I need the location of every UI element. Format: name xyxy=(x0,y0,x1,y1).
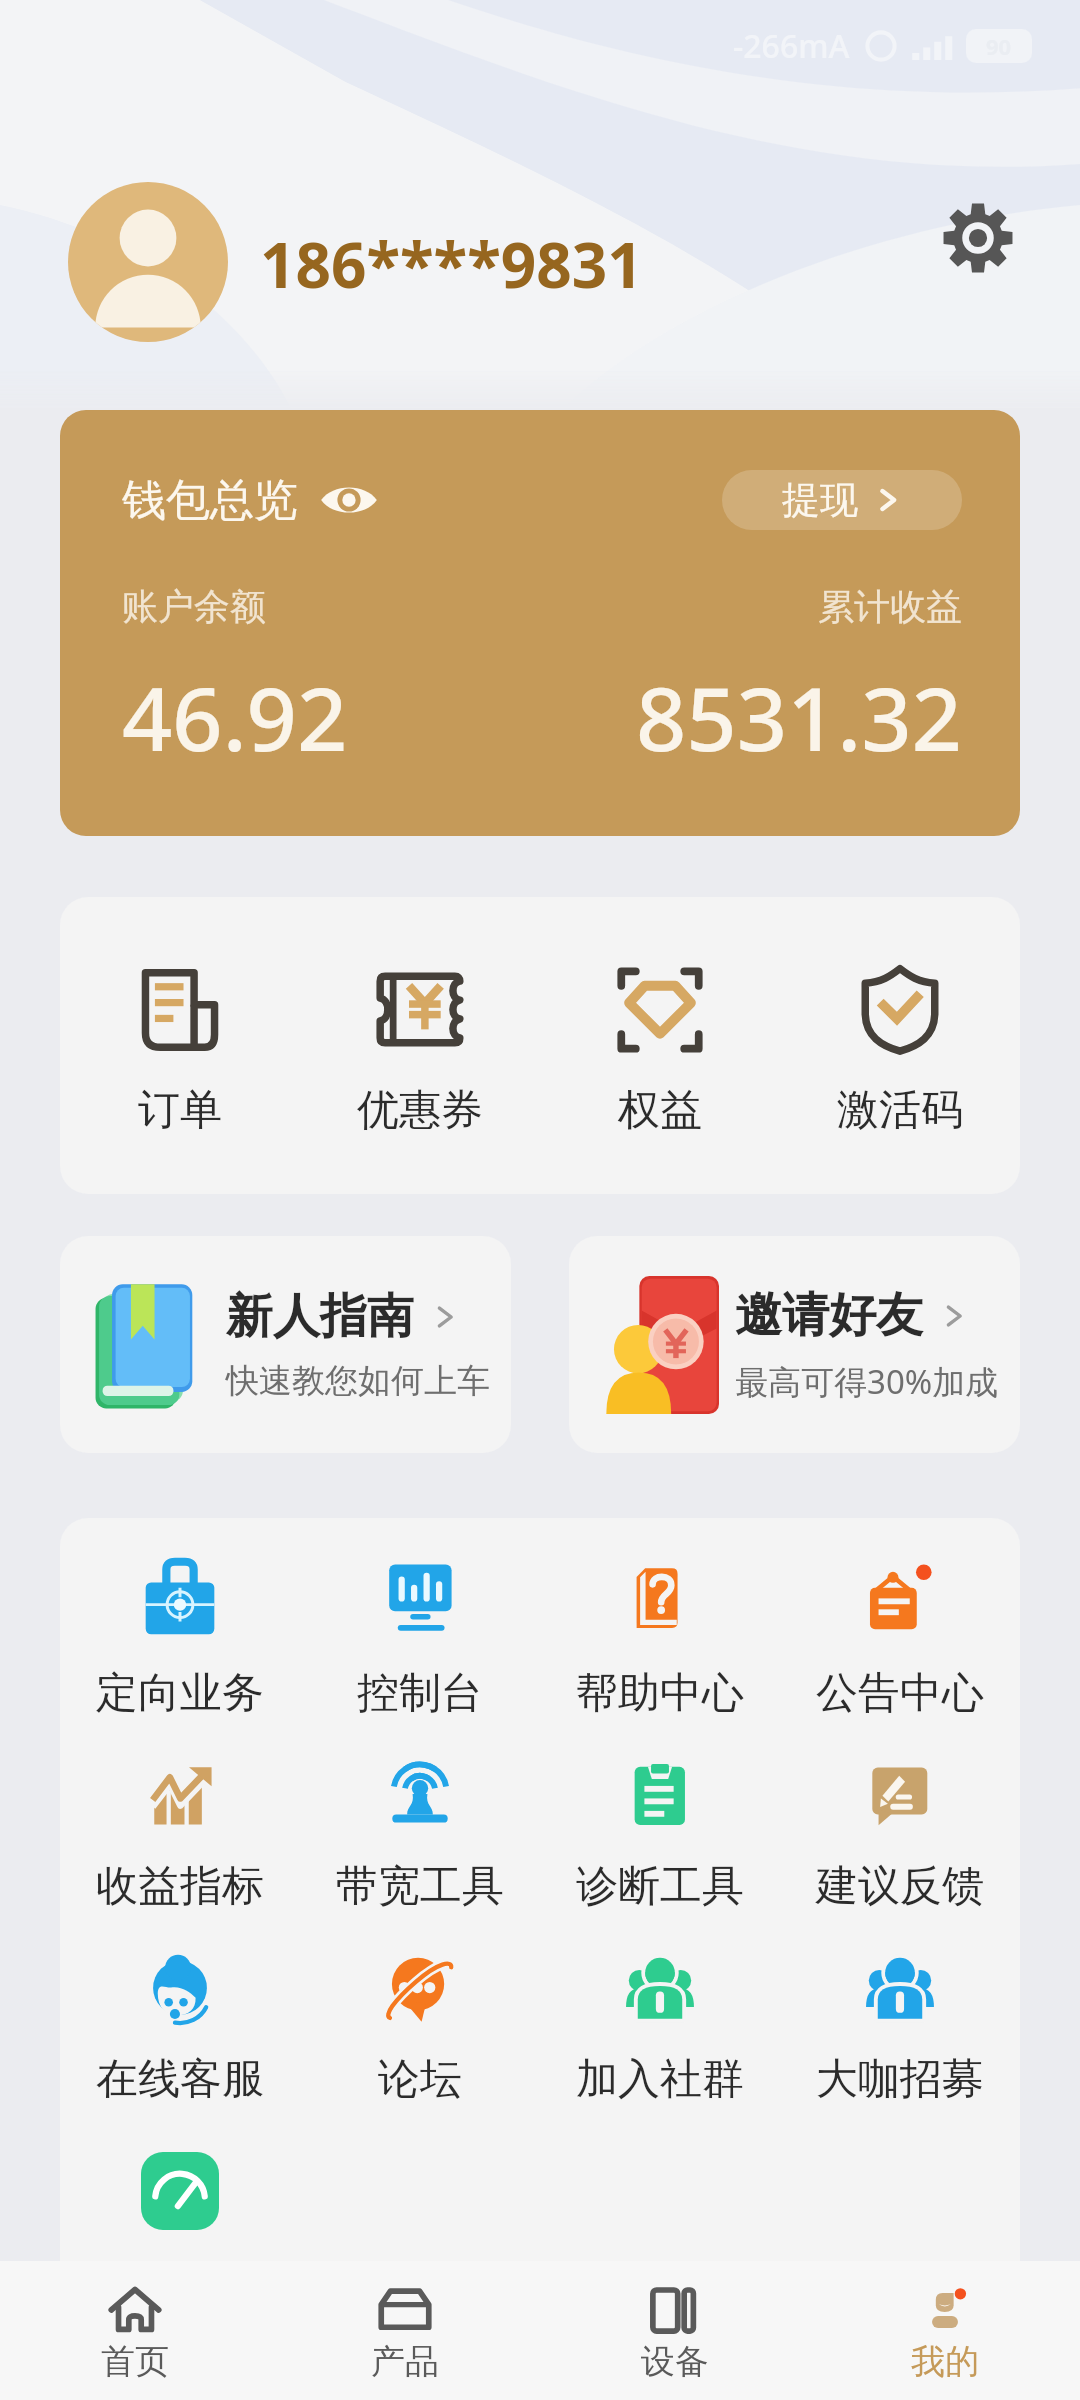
staticText: 46.92 xyxy=(122,657,348,777)
staticText: 在线客服 xyxy=(96,2053,264,2106)
button[interactable]: 产品 xyxy=(270,2283,540,2383)
button[interactable]: 帮助中心 xyxy=(540,1559,780,1720)
staticText: 公告中心 xyxy=(816,1667,984,1720)
button[interactable]: 提现 xyxy=(722,470,962,530)
staticText: 帮助中心 xyxy=(576,1667,744,1720)
staticText: 8531.32 xyxy=(636,657,962,777)
staticText: 定向业务 xyxy=(96,1667,264,1720)
staticText: 快速教您如何上车 xyxy=(226,1360,490,1402)
staticText: 钱包总览 xyxy=(122,473,298,528)
staticText: 累计收益 xyxy=(818,584,962,629)
button[interactable]: 首页 xyxy=(0,2283,270,2383)
staticText: 我的 xyxy=(911,2340,979,2383)
staticText: 186****9831 xyxy=(260,222,643,306)
button[interactable]: 控制台 xyxy=(300,1559,540,1720)
staticText: 提现 xyxy=(782,476,858,524)
button[interactable]: Settings xyxy=(938,198,1018,278)
button[interactable]: 建议反馈 xyxy=(780,1752,1020,1913)
button[interactable]: 公告中心 xyxy=(780,1559,1020,1720)
button[interactable]: 论坛 xyxy=(300,1945,540,2106)
button[interactable]: 钱包总览 xyxy=(60,410,1020,836)
button[interactable]: 加入社群 xyxy=(540,1945,780,2106)
staticText: 建议反馈 xyxy=(816,1860,984,1913)
button[interactable]: 权益 xyxy=(540,966,780,1137)
staticText: 订单 xyxy=(138,1084,222,1137)
staticText: 产品 xyxy=(371,2340,439,2383)
staticText: 邀请好友 xyxy=(735,1286,940,1345)
staticText: 带宽工具 xyxy=(336,1860,504,1913)
button[interactable]: Profile avatar xyxy=(68,182,228,342)
button[interactable]: 设备 xyxy=(540,2283,810,2383)
button[interactable]: 定向业务 xyxy=(60,1559,300,1720)
button[interactable]: 新人指南 xyxy=(60,1236,511,1453)
button[interactable]: 激活码 xyxy=(780,966,1020,1137)
button[interactable]: Speed test xyxy=(141,2152,219,2230)
staticText: 收益指标 xyxy=(96,1860,264,1913)
button[interactable]: 带宽工具 xyxy=(300,1752,540,1913)
staticText: 诊断工具 xyxy=(576,1860,744,1913)
button[interactable]: 收益指标 xyxy=(60,1752,300,1913)
staticText: 最高可得30%加成 xyxy=(735,1359,999,1404)
button[interactable]: 在线客服 xyxy=(60,1945,300,2106)
staticText: 账户余额 xyxy=(122,584,266,629)
button[interactable]: 优惠券 xyxy=(300,966,540,1137)
staticText: 首页 xyxy=(101,2340,169,2383)
staticText: 设备 xyxy=(641,2340,709,2383)
button[interactable]: 诊断工具 xyxy=(540,1752,780,1913)
staticText: -266mA xyxy=(733,24,850,68)
staticText: 新人指南 xyxy=(226,1287,431,1346)
staticText: 权益 xyxy=(618,1084,702,1137)
staticText: 优惠券 xyxy=(357,1084,483,1137)
staticText: 大咖招募 xyxy=(816,2053,984,2106)
staticText: 激活码 xyxy=(837,1084,963,1137)
button[interactable]: 我的 xyxy=(810,2283,1080,2383)
button[interactable]: 订单 xyxy=(60,966,300,1137)
button[interactable]: 邀请好友 xyxy=(569,1236,1020,1453)
staticText: 控制台 xyxy=(357,1667,483,1720)
button[interactable]: 大咖招募 xyxy=(780,1945,1020,2106)
button[interactable]: Toggle balance visibility xyxy=(320,471,378,529)
staticText: 加入社群 xyxy=(576,2053,744,2106)
staticText: 论坛 xyxy=(378,2053,462,2106)
